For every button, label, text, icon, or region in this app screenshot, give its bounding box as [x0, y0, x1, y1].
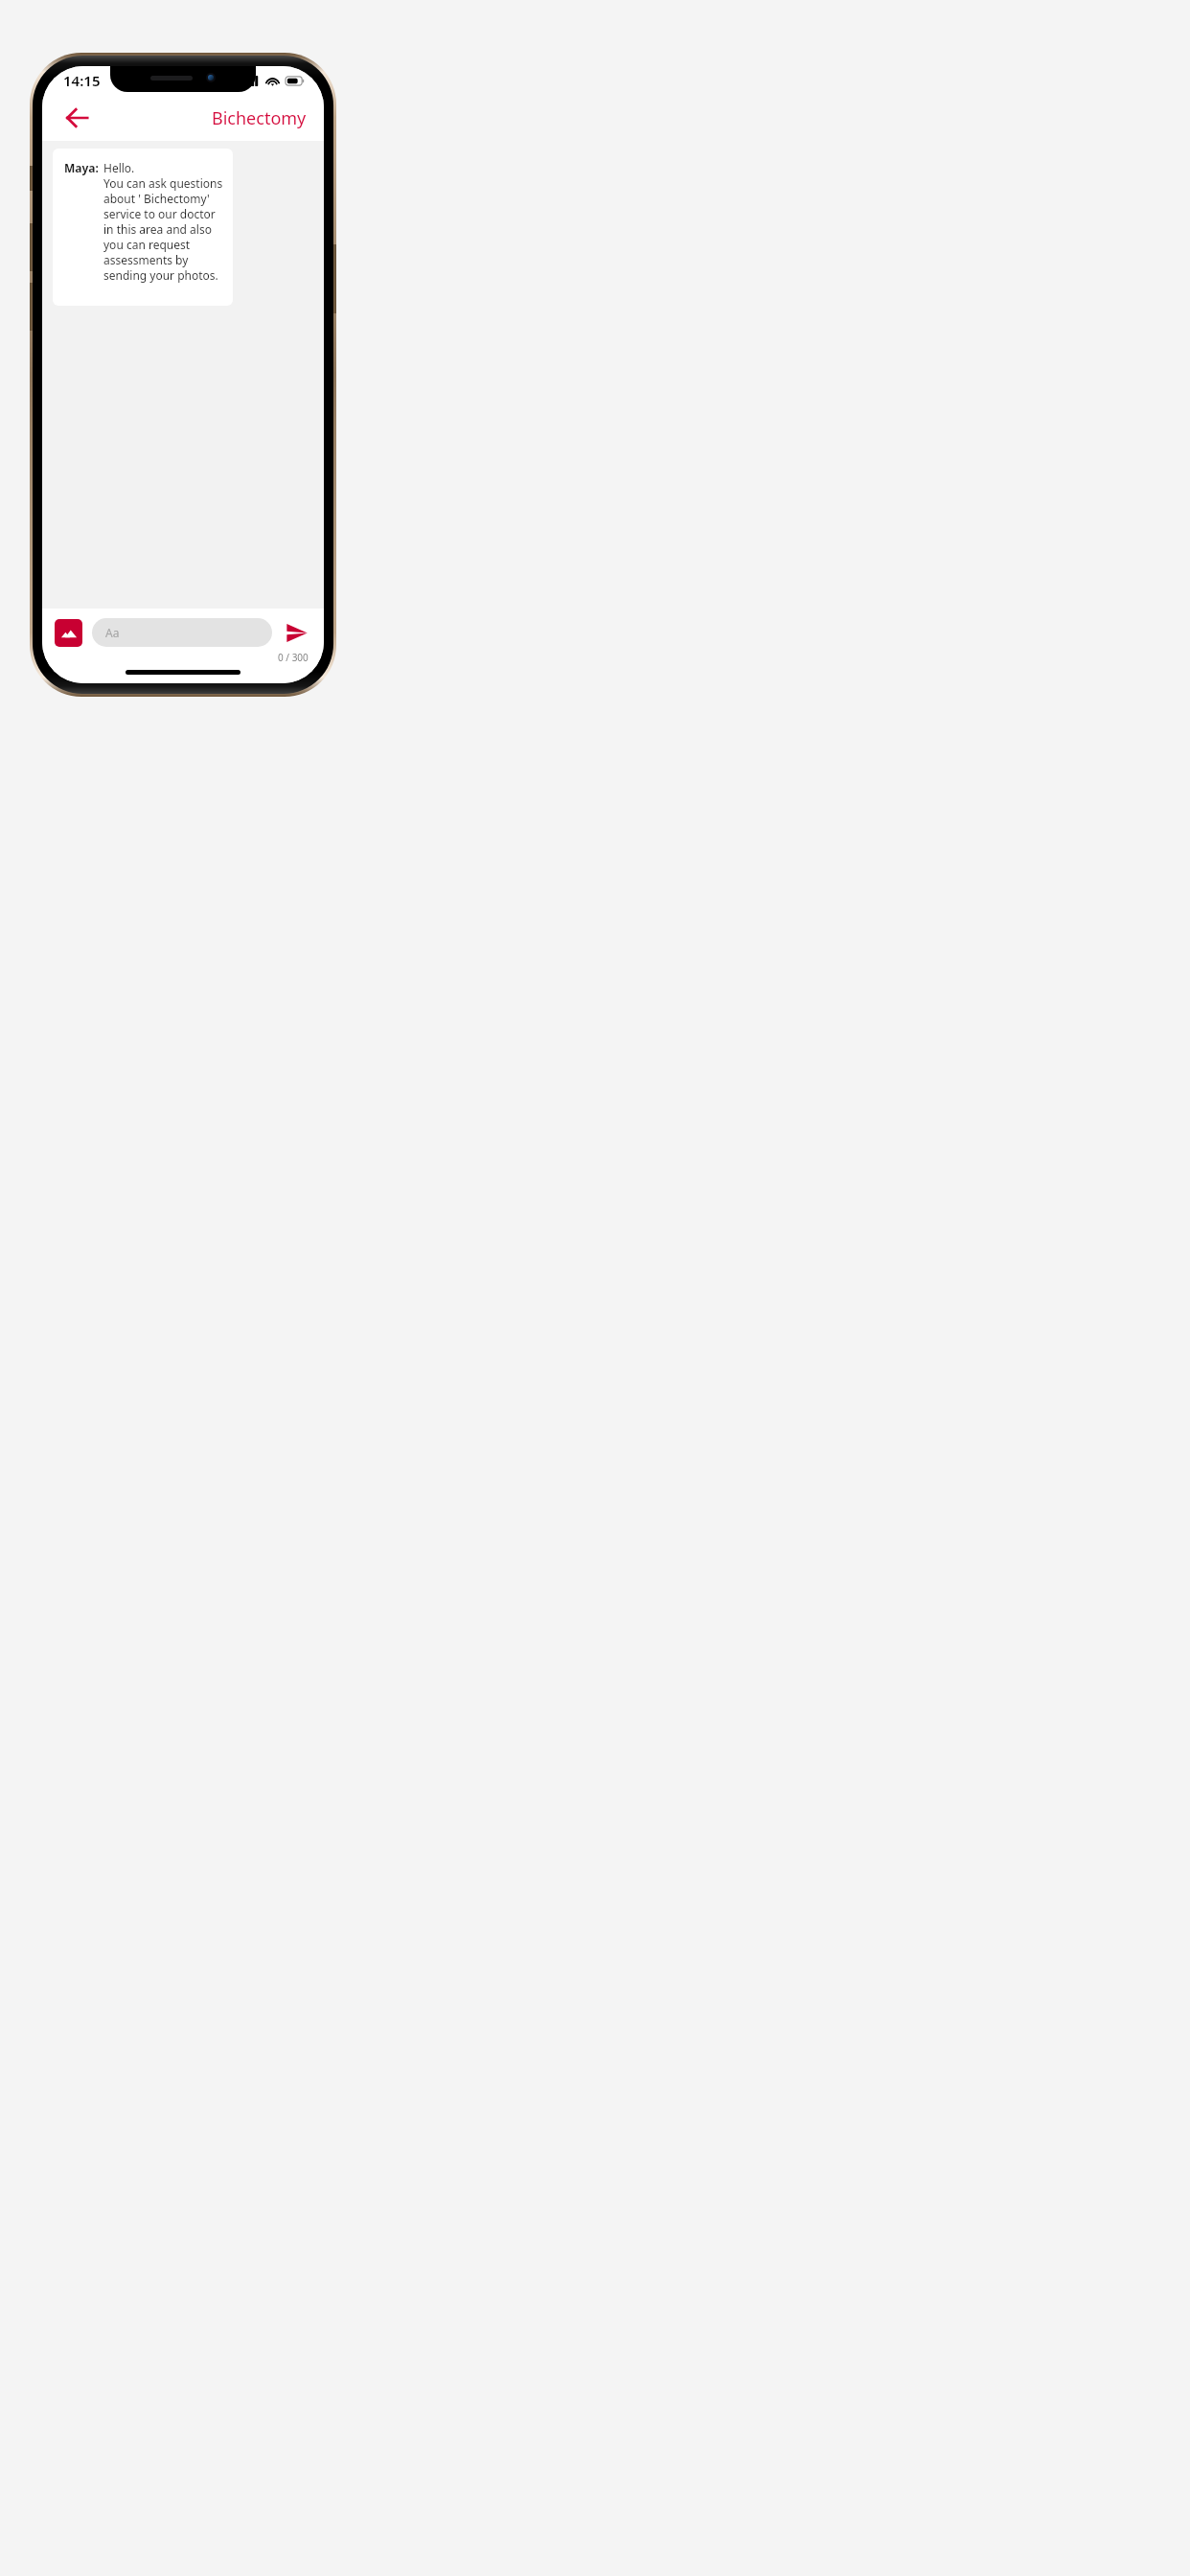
staticText: Aa — [105, 625, 120, 640]
staticText: Hello. You can ask questions about ' Bic… — [103, 160, 223, 283]
button[interactable]: Back — [56, 97, 98, 139]
button[interactable]: Send — [280, 616, 312, 649]
staticText: 14:15 — [63, 71, 101, 90]
button[interactable]: Aa — [92, 618, 272, 647]
button[interactable]: Attach photo — [55, 619, 82, 647]
staticText: Bichectomy — [212, 106, 307, 130]
staticText: Maya: — [64, 160, 99, 175]
button[interactable]: Maya: — [53, 149, 233, 306]
staticText: 0 / 300 — [278, 651, 309, 664]
